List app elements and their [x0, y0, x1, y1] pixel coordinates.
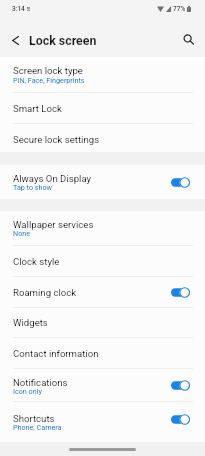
button[interactable]: Notifications toggle — [171, 380, 190, 391]
staticText: Phone, Camera — [13, 423, 62, 431]
button[interactable]: Clock style — [0, 246, 205, 276]
staticText: None — [13, 229, 31, 237]
staticText: Smart Lock — [13, 103, 62, 114]
button[interactable]: Always On Display toggle — [171, 177, 190, 188]
staticText: Widgets — [13, 317, 48, 328]
button[interactable]: Wallpaper services — [0, 211, 205, 245]
button[interactable]: Smart Lock — [0, 93, 205, 123]
button[interactable]: Always On Display — [0, 165, 205, 199]
staticText: Always On Display — [13, 173, 92, 184]
button[interactable]: Secure lock settings — [0, 124, 205, 152]
staticText: Screen lock type — [13, 65, 83, 76]
staticText: Lock screen — [29, 33, 97, 48]
button[interactable]: Shortcuts — [0, 402, 205, 442]
button[interactable]: Notifications — [0, 369, 205, 401]
staticText: 3:14 — [12, 5, 25, 13]
staticText: Notifications — [13, 377, 68, 388]
button[interactable]: Screen lock type — [0, 57, 205, 92]
button[interactable]: Roaming clock toggle — [171, 287, 190, 298]
button[interactable]: Shortcuts toggle — [171, 414, 190, 425]
staticText: Contact information — [13, 348, 99, 359]
staticText: Icon only — [13, 387, 42, 395]
staticText: PIN, Face, Fingerprints — [13, 76, 85, 84]
staticText: 77% — [173, 5, 186, 13]
staticText: Roaming clock — [13, 287, 77, 298]
staticText: Wallpaper services — [13, 219, 94, 230]
button[interactable]: Navigate up — [4, 29, 26, 51]
staticText: Tap to show — [13, 183, 52, 191]
staticText: Clock style — [13, 256, 60, 267]
button[interactable]: Roaming clock — [0, 277, 205, 307]
button[interactable]: Widgets — [0, 308, 205, 337]
staticText: Shortcuts — [13, 413, 55, 424]
button[interactable]: Contact information — [0, 338, 205, 368]
staticText: Secure lock settings — [13, 134, 100, 145]
button[interactable]: Search — [177, 28, 199, 50]
